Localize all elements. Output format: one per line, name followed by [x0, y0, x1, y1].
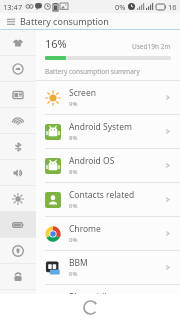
button[interactable]: Android OS: [36, 149, 180, 183]
button[interactable]: Setting: [0, 30, 36, 56]
button[interactable]: BBM: [36, 251, 180, 285]
button[interactable]: Chrome: [36, 217, 180, 251]
staticText: 16%: [45, 36, 67, 51]
button[interactable]: Screen: [36, 81, 180, 115]
button[interactable]: Phone idle: [36, 285, 180, 319]
button[interactable]: Android System: [36, 115, 180, 149]
staticText: Android System: [69, 121, 132, 133]
staticText: 6%: [69, 202, 78, 210]
staticText: Screen: [69, 87, 96, 99]
button[interactable]: Setting: [0, 56, 36, 82]
button[interactable]: Setting: [0, 82, 36, 108]
staticText: 13:47: [3, 2, 23, 12]
staticText: 0%: [69, 236, 78, 244]
staticText: 8%: [69, 134, 78, 142]
button[interactable]: Setting: [0, 238, 36, 264]
button[interactable]: Setting: [0, 108, 36, 134]
staticText: 16: [168, 2, 177, 12]
button[interactable]: Menu: [5, 16, 16, 27]
button[interactable]: Setting: [0, 212, 36, 238]
staticText: BBM: [69, 257, 88, 269]
staticText: 8%: [69, 168, 78, 176]
staticText: 6%: [69, 270, 78, 278]
staticText: Battery consumption summary: [45, 67, 140, 76]
staticText: Battery consumption: [20, 15, 109, 27]
button[interactable]: Contacts related: [36, 183, 180, 217]
staticText: Android OS: [69, 155, 115, 167]
staticText: Contacts related: [69, 189, 135, 201]
staticText: 0%: [115, 2, 126, 12]
staticText: Used19h 2m: [132, 42, 171, 51]
button[interactable]: Setting: [0, 160, 36, 186]
button[interactable]: Setting: [0, 134, 36, 160]
button[interactable]: Setting: [0, 186, 36, 212]
staticText: Chrome: [69, 223, 101, 235]
button[interactable]: Setting: [0, 264, 36, 290]
staticText: 9%: [69, 100, 78, 108]
staticText: Phone idle: [69, 291, 112, 303]
